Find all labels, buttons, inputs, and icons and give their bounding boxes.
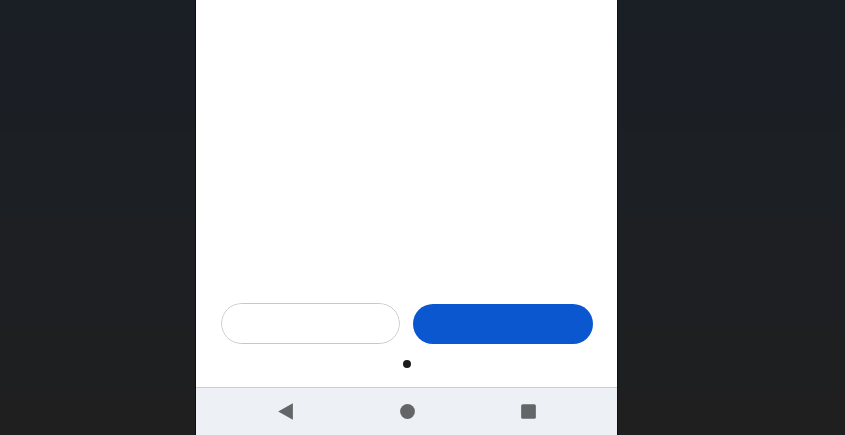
button[interactable]: Skip	[221, 303, 400, 344]
button[interactable]: Back	[261, 388, 309, 435]
button[interactable]: Page 1	[403, 360, 411, 368]
button[interactable]: Home	[383, 388, 431, 435]
button[interactable]: Continue	[413, 304, 593, 344]
button[interactable]: Recent apps	[504, 388, 552, 435]
